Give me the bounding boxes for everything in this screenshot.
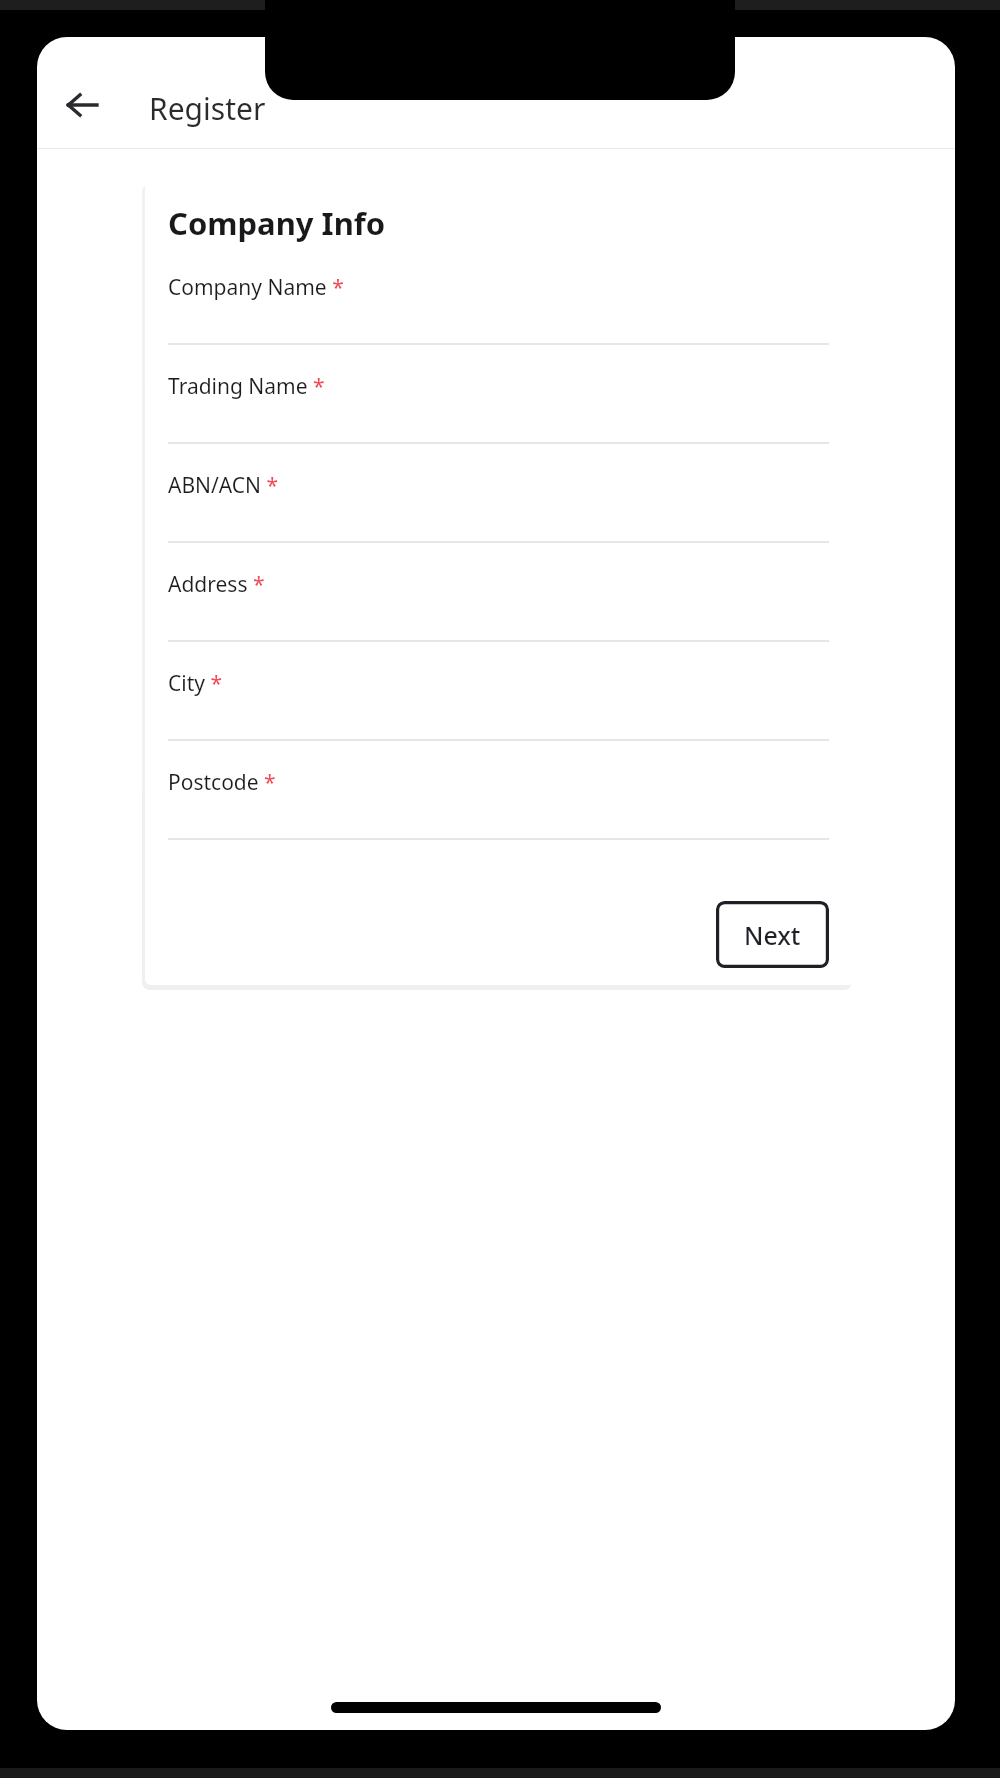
button[interactable]: Back: [54, 77, 110, 133]
staticText: Register: [149, 88, 266, 129]
staticText: Next: [744, 918, 801, 952]
staticText: Address *: [168, 570, 265, 599]
staticText: City *: [168, 669, 223, 698]
staticText: Company Info: [168, 202, 386, 244]
staticText: ABN/ACN *: [168, 471, 279, 500]
button[interactable]: Next: [716, 901, 829, 968]
staticText: Trading Name *: [168, 372, 325, 401]
staticText: Postcode *: [168, 768, 276, 797]
staticText: Company Name *: [168, 273, 344, 302]
